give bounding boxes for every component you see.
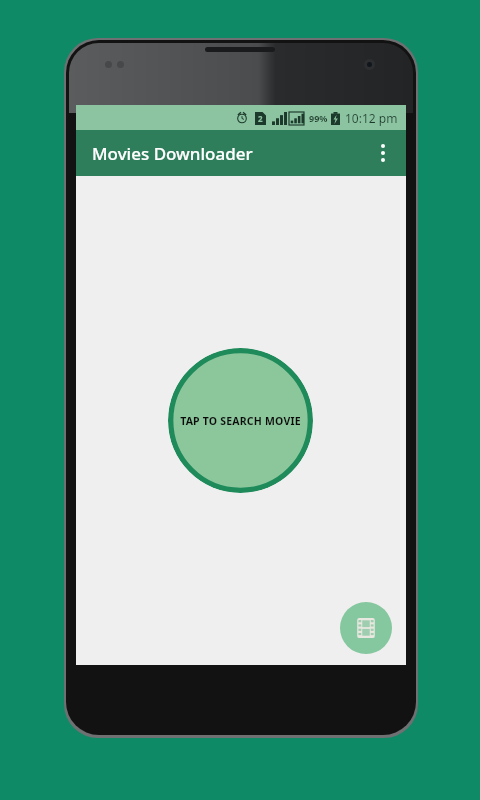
button[interactable]: Downloads: [340, 602, 392, 654]
staticText: 10:12 pm: [345, 110, 398, 126]
button[interactable]: More options: [360, 130, 406, 176]
staticText: 99%: [309, 112, 328, 124]
staticText: TAP TO SEARCH MOVIE: [180, 414, 301, 428]
staticText: Movies Downloader: [92, 142, 253, 165]
staticText: 2: [258, 113, 263, 124]
button[interactable]: TAP TO SEARCH MOVIE: [168, 348, 313, 493]
